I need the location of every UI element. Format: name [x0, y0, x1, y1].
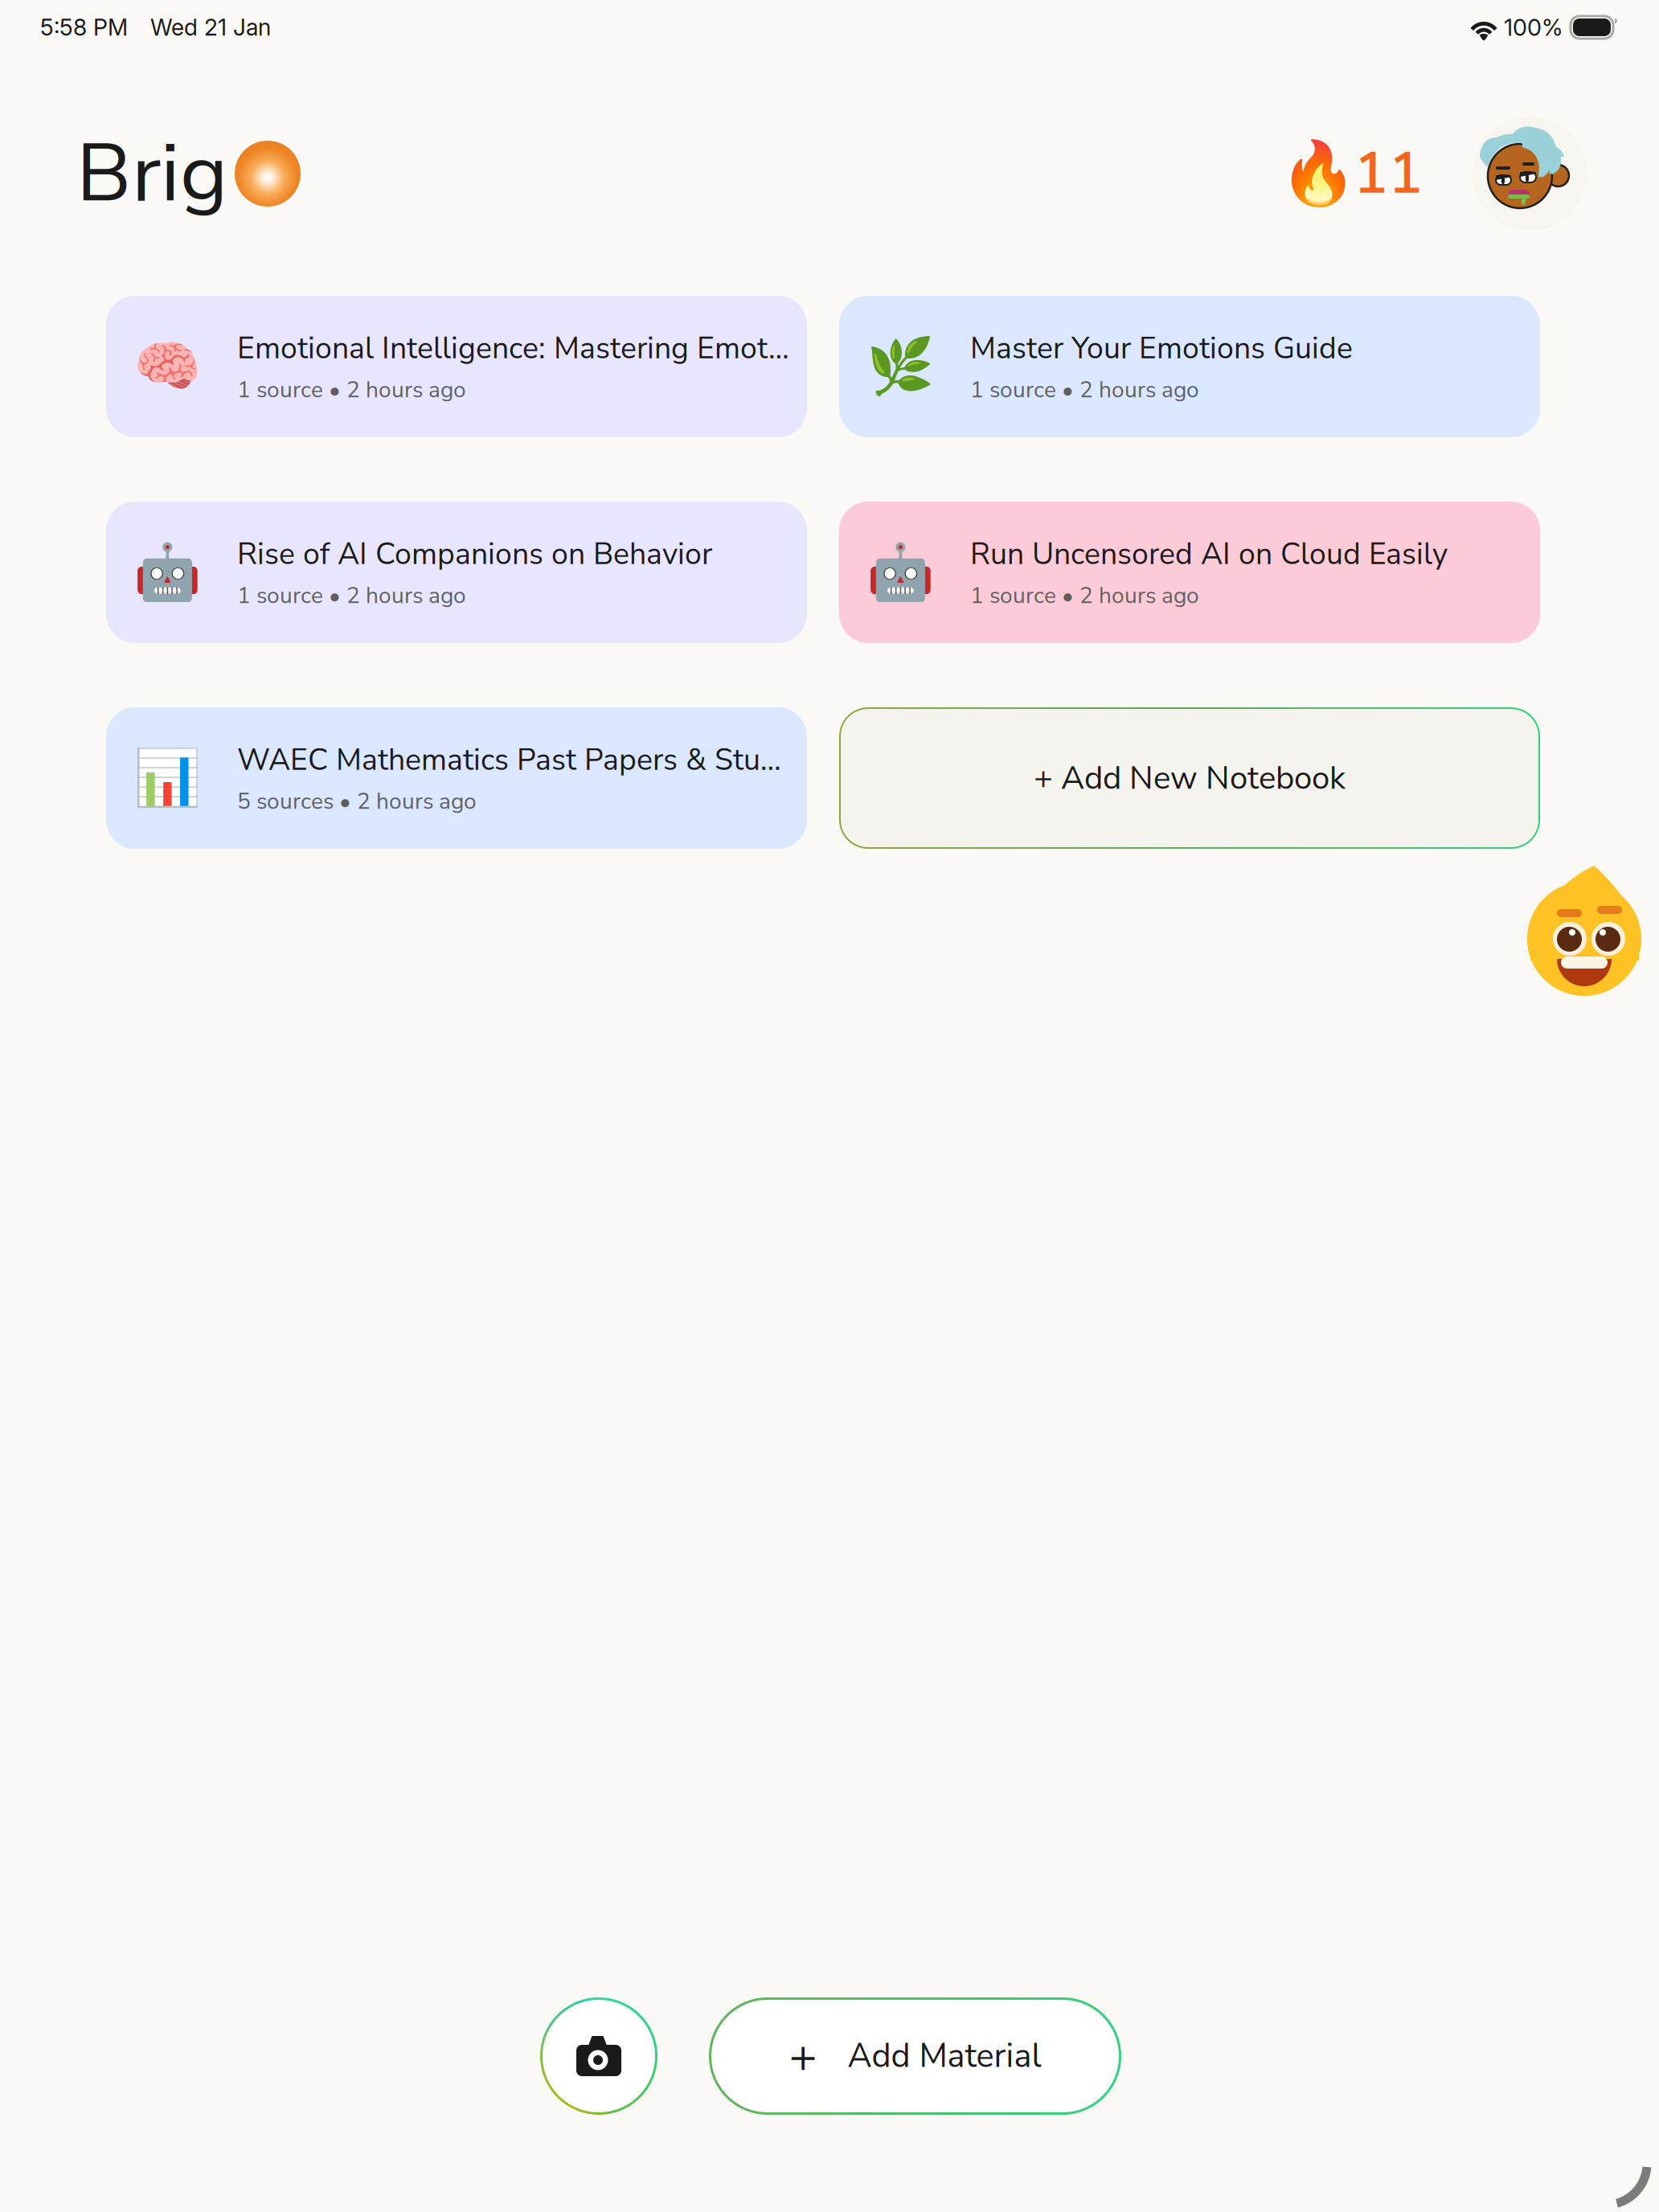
staticText: + Add New Notebook [1034, 756, 1346, 800]
staticText: Wed 21 Jan [150, 14, 271, 41]
staticText: Emotional Intelligence: Mastering Emot… [237, 328, 789, 369]
button[interactable]: 🤖 [106, 502, 807, 643]
button[interactable]: + Add New Notebook [839, 707, 1540, 849]
staticText: Rise of AI Companions on Behavior [237, 534, 712, 575]
staticText: 11 [1354, 134, 1423, 213]
staticText: 1 source • 2 hours ago [237, 580, 466, 611]
staticText: Add Material [848, 2033, 1041, 2079]
staticText: 5 sources • 2 hours ago [237, 786, 477, 817]
staticText: 1 source • 2 hours ago [970, 374, 1199, 405]
staticText: WAEC Mathematics Past Papers & Stu… [237, 739, 781, 780]
button[interactable]: 📊 [106, 707, 807, 849]
staticText: 1 source • 2 hours ago [970, 580, 1199, 611]
staticText: Master Your Emotions Guide [970, 328, 1353, 369]
staticText: 🌿 [866, 335, 934, 399]
button[interactable]: + [709, 1997, 1121, 2115]
button[interactable]: 🧠 [106, 296, 807, 437]
staticText: 🤖 [866, 540, 934, 604]
staticText: Run Uncensored AI on Cloud Easily [970, 534, 1448, 575]
staticText: 100% [1504, 13, 1563, 41]
staticText: 📊 [133, 746, 201, 810]
button[interactable]: Take photo [540, 1997, 657, 2115]
staticText: 🤖 [133, 540, 201, 604]
staticText: 1 source • 2 hours ago [237, 374, 466, 405]
staticText: + [789, 2024, 817, 2088]
staticText: 🧠 [133, 335, 201, 399]
button[interactable]: 🌿 [839, 296, 1540, 437]
staticText: 5:58 PM [40, 14, 128, 41]
button[interactable]: 🤖 [839, 502, 1540, 643]
staticText: 🔥 [1280, 137, 1357, 210]
staticText: Brig [76, 118, 227, 229]
